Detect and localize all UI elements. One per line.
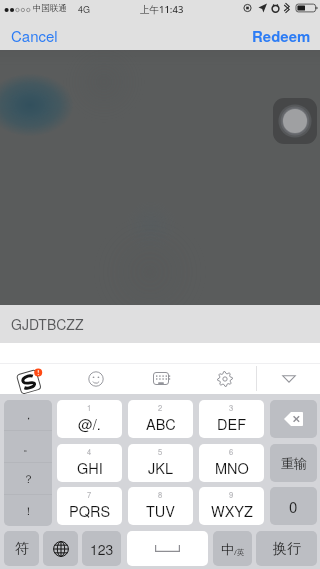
button[interactable]: ！ xyxy=(4,495,52,526)
staticText: /英 xyxy=(234,547,245,557)
button[interactable]: Space xyxy=(127,531,208,566)
button[interactable]: 8 xyxy=(128,487,193,525)
button[interactable]: 5 xyxy=(128,444,193,482)
staticText: 4 xyxy=(87,446,92,457)
staticText: 中 xyxy=(221,541,234,557)
staticText: GJDTBCZZ xyxy=(11,314,84,334)
staticText: Cancel xyxy=(11,25,58,46)
button[interactable]: ， xyxy=(4,400,52,430)
button[interactable]: Settings xyxy=(199,363,251,394)
button[interactable]: AssistiveTouch xyxy=(273,98,317,144)
button[interactable]: Delete xyxy=(270,400,317,438)
button[interactable]: 9 xyxy=(199,487,264,525)
staticText: TUV xyxy=(146,500,175,521)
button[interactable]: 3 xyxy=(199,400,264,438)
staticText: JKL xyxy=(148,457,173,478)
staticText: 123 xyxy=(90,539,114,559)
button[interactable]: Keyboard layout xyxy=(135,363,187,394)
staticText: @/. xyxy=(78,413,101,434)
staticText: ！ xyxy=(23,504,34,518)
staticText: MNO xyxy=(215,457,249,478)
button[interactable]: 7 xyxy=(57,487,122,525)
button[interactable]: 0 xyxy=(270,487,317,525)
staticText: 8 xyxy=(158,489,163,500)
staticText: ABC xyxy=(146,413,176,434)
staticText: 换行 xyxy=(273,540,301,558)
staticText: 3 xyxy=(229,402,234,413)
staticText: ， xyxy=(23,408,34,422)
button[interactable]: 1 xyxy=(57,400,122,438)
staticText: 2 xyxy=(158,402,163,413)
staticText: 7 xyxy=(87,489,92,500)
button[interactable]: 6 xyxy=(199,444,264,482)
staticText: ？ xyxy=(23,472,34,486)
staticText: 上午11:43 xyxy=(140,3,184,16)
staticText: 0 xyxy=(289,496,298,517)
button[interactable]: 重输 xyxy=(270,444,317,482)
staticText: 9 xyxy=(229,489,234,500)
button[interactable]: Switch language xyxy=(43,531,78,566)
button[interactable]: Hide keyboard xyxy=(258,363,320,394)
staticText: 1 xyxy=(87,402,92,413)
button[interactable]: 2 xyxy=(128,400,193,438)
staticText: 符 xyxy=(15,540,29,558)
button[interactable]: Emoji xyxy=(70,363,122,394)
button[interactable]: 4 xyxy=(57,444,122,482)
staticText: DEF xyxy=(217,413,246,434)
staticText: 6 xyxy=(229,446,234,457)
staticText: Redeem xyxy=(252,25,311,46)
staticText: GHI xyxy=(77,457,103,478)
button[interactable]: 换行 xyxy=(256,531,317,566)
staticText: PQRS xyxy=(69,500,111,521)
button[interactable]: 符 xyxy=(4,531,39,566)
button[interactable]: Redeem xyxy=(252,20,320,50)
staticText: 中国联通 xyxy=(33,3,67,14)
staticText: 5 xyxy=(158,446,163,457)
button[interactable]: 中 xyxy=(213,531,252,566)
staticText: WXYZ xyxy=(211,500,253,521)
button[interactable]: ？ xyxy=(4,463,52,494)
button[interactable]: 。 xyxy=(4,431,52,462)
staticText: 。 xyxy=(23,440,34,454)
button[interactable]: Sogou input xyxy=(6,363,58,394)
button[interactable]: Cancel xyxy=(0,20,75,50)
staticText: 重输 xyxy=(281,455,307,471)
button[interactable]: 123 xyxy=(82,531,121,566)
staticText: 4G xyxy=(78,3,91,16)
